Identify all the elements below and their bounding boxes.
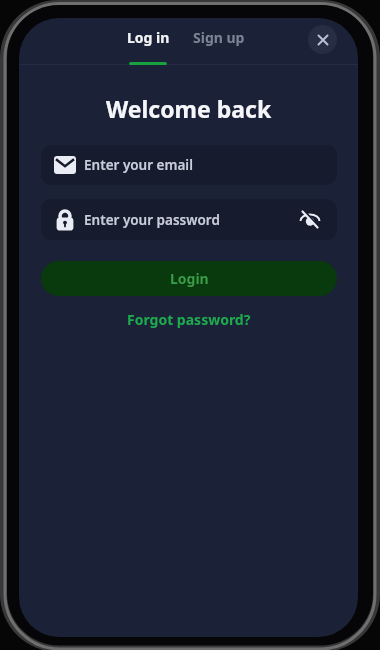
- button[interactable]: Forgot password?: [108, 306, 269, 333]
- staticText: Sign up: [193, 28, 245, 47]
- staticText: Forgot password?: [127, 310, 251, 329]
- staticText: Enter your email: [84, 156, 193, 174]
- button[interactable]: Sign up: [188, 20, 250, 54]
- button[interactable]: [290, 199, 330, 240]
- button[interactable]: Log in: [118, 20, 179, 54]
- button[interactable]: Login: [41, 261, 337, 296]
- staticText: Welcome back: [106, 93, 272, 124]
- staticText: Login: [170, 269, 209, 288]
- button[interactable]: Enter your password: [41, 199, 337, 240]
- button[interactable]: [308, 25, 337, 54]
- staticText: Enter your password: [84, 211, 220, 229]
- staticText: Log in: [127, 28, 170, 47]
- button[interactable]: Enter your email: [41, 145, 337, 185]
